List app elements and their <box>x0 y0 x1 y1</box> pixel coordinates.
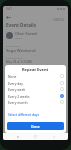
staticText: CANCEL <box>53 18 65 22</box>
button[interactable]: Home <box>32 133 39 140</box>
staticText: Event Details <box>6 22 37 28</box>
button[interactable]: Done <box>7 122 64 130</box>
staticText: Every day <box>8 81 23 85</box>
button[interactable]: Back <box>4 13 12 21</box>
staticText: None <box>8 74 17 78</box>
staticText: Repeat Event <box>22 67 49 72</box>
staticText: Oliver Kuewel <box>15 31 38 36</box>
staticText: Every 2 weeks <box>8 94 30 98</box>
staticText: Event Name <box>6 44 20 47</box>
staticText: May 28 at 3:30 AM <box>6 60 32 64</box>
button[interactable]: Every month <box>5 99 66 105</box>
button[interactable]: Every week <box>5 86 66 92</box>
button[interactable]: None <box>5 73 66 79</box>
button[interactable]: Every day <box>5 80 66 86</box>
staticText: Done <box>31 124 40 129</box>
staticText: Every week <box>8 87 26 91</box>
button[interactable]: Recents <box>14 133 21 140</box>
staticText: Yoga Weekend <box>6 48 36 54</box>
staticText: Date and Time <box>6 56 23 59</box>
staticText: 9:41 <box>6 7 12 11</box>
button[interactable]: CANCEL <box>52 16 66 24</box>
staticText: Owner <box>15 36 23 39</box>
staticText: Every month <box>8 100 28 104</box>
staticText: Select different days <box>8 113 40 117</box>
button[interactable]: Every 2 weeks <box>5 93 66 99</box>
button[interactable]: Back <box>50 133 57 140</box>
button[interactable]: Select different days <box>5 112 66 118</box>
